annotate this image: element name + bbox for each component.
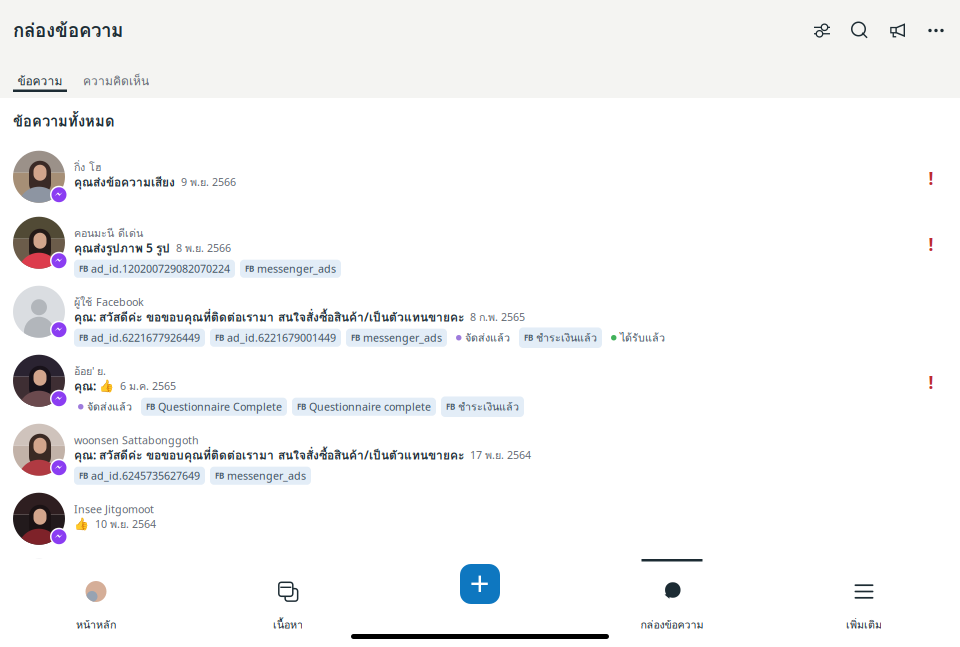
- staticText: Insee Jitgomoot: [74, 502, 154, 516]
- button[interactable]: Create new: [460, 564, 500, 604]
- staticText: Questionnaire Complete: [158, 400, 282, 414]
- staticText: FB: [146, 401, 155, 412]
- staticText: FB: [245, 263, 254, 274]
- staticText: จัดส่งแล้ว: [87, 398, 132, 415]
- button[interactable]: Filter: [803, 14, 841, 46]
- staticText: FB: [524, 332, 533, 343]
- staticText: FB: [79, 332, 88, 343]
- staticText: เพิ่มเติม: [846, 616, 882, 633]
- staticText: ผู้ใช้ Facebook: [74, 294, 144, 310]
- button[interactable]: woonsen Sattabonggoth: [0, 424, 960, 493]
- staticText: !: [928, 371, 933, 394]
- button[interactable]: คอนมะนี ดีเด่น: [0, 217, 960, 286]
- staticText: FB: [351, 332, 360, 343]
- staticText: กล่องข้อความ: [640, 616, 703, 633]
- staticText: ad_id.6245735627649: [91, 469, 200, 483]
- staticText: คุณ: สวัสดีค่ะ ขอขอบคุณที่ติดต่อเรามา สน…: [74, 308, 464, 326]
- button[interactable]: กิ่ง โฮ: [0, 151, 960, 217]
- button[interactable]: เพิ่มเติม: [768, 559, 960, 647]
- button[interactable]: กล่องข้อความ: [576, 559, 768, 647]
- staticText: อ้อย' ย.: [74, 363, 106, 379]
- button[interactable]: หน้าหลัก: [0, 559, 192, 647]
- button[interactable]: Insee Jitgomoot: [0, 493, 960, 559]
- button[interactable]: [384, 559, 576, 647]
- button[interactable]: Ads: [879, 14, 917, 46]
- staticText: messenger_ads: [363, 331, 442, 345]
- button[interactable]: More options: [917, 14, 955, 46]
- staticText: ad_id.6221679001449: [227, 331, 336, 345]
- staticText: 17 พ.ย. 2564: [470, 447, 531, 463]
- staticText: FB: [215, 470, 224, 481]
- staticText: คุณ: 👍: [74, 377, 114, 395]
- staticText: FB: [79, 470, 88, 481]
- button[interactable]: Search: [841, 14, 879, 46]
- staticText: หน้าหลัก: [76, 616, 116, 633]
- staticText: ข้อความทั้งหมด: [13, 110, 115, 133]
- staticText: กิ่ง โฮ: [74, 159, 102, 175]
- staticText: Questionnaire complete: [309, 400, 431, 414]
- staticText: เนื้อหา: [273, 616, 303, 633]
- staticText: คุณ: สวัสดีค่ะ ขอขอบคุณที่ติดต่อเรามา สน…: [74, 446, 464, 464]
- staticText: FB: [446, 401, 455, 412]
- staticText: woonsen Sattabonggoth: [74, 433, 199, 447]
- button[interactable]: อ้อย' ย.: [0, 355, 960, 424]
- staticText: FB: [297, 401, 306, 412]
- staticText: 👍: [74, 517, 89, 531]
- staticText: ชำระเงินแล้ว: [536, 329, 597, 346]
- staticText: 6 ม.ค. 2565: [120, 378, 176, 394]
- staticText: 10 พ.ย. 2564: [95, 516, 156, 532]
- staticText: ข้อความ: [17, 72, 62, 90]
- staticText: คอนมะนี ดีเด่น: [74, 225, 143, 241]
- button[interactable]: ความคิดเห็น: [67, 70, 149, 92]
- staticText: คุณส่งรูปภาพ 5 รูป: [74, 239, 170, 257]
- staticText: 8 พ.ย. 2566: [176, 240, 231, 256]
- staticText: !: [928, 233, 933, 256]
- staticText: messenger_ads: [227, 469, 306, 483]
- staticText: ad_id.120200729082070224: [91, 262, 230, 276]
- staticText: 8 ก.พ. 2565: [470, 309, 525, 325]
- button[interactable]: ข้อความ: [0, 70, 67, 92]
- button[interactable]: ผู้ใช้ Facebook: [0, 286, 960, 355]
- staticText: กล่องข้อความ: [13, 16, 123, 45]
- staticText: ชำระเงินแล้ว: [458, 398, 519, 415]
- staticText: 9 พ.ย. 2566: [181, 174, 236, 190]
- staticText: ad_id.6221677926449: [91, 331, 200, 345]
- staticText: messenger_ads: [257, 262, 336, 276]
- staticText: FB: [215, 332, 224, 343]
- staticText: จัดส่งแล้ว: [465, 329, 510, 346]
- staticText: FB: [79, 263, 88, 274]
- staticText: ความคิดเห็น: [83, 72, 149, 90]
- button[interactable]: ก: [0, 559, 960, 625]
- button[interactable]: เนื้อหา: [192, 559, 384, 647]
- staticText: ได้รับแล้ว: [620, 329, 665, 346]
- staticText: !: [928, 167, 933, 190]
- staticText: คุณส่งข้อความเสียง: [74, 173, 175, 191]
